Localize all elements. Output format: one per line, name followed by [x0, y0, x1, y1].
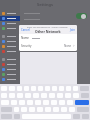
staticText: Security [21, 44, 32, 48]
button[interactable] [0, 26, 20, 31]
staticText: None [64, 44, 72, 48]
button[interactable] [0, 44, 20, 49]
button[interactable]: key [75, 100, 89, 105]
button[interactable] [0, 49, 20, 54]
staticText: Cancel [21, 28, 30, 32]
button[interactable]: Wi-Fi toggle [76, 13, 87, 19]
button[interactable] [0, 72, 20, 77]
button[interactable] [0, 77, 20, 82]
button[interactable] [0, 11, 20, 16]
staticText: Settings [37, 2, 53, 7]
button[interactable]: Security [19, 42, 77, 50]
button[interactable]: Cancel [21, 28, 30, 32]
button[interactable] [0, 62, 20, 67]
staticText: Other Network [35, 29, 61, 34]
button[interactable] [0, 34, 20, 39]
staticText: Enter the password for "Other Network" [27, 26, 69, 29]
staticText: > [73, 44, 75, 48]
staticText: Join [70, 28, 75, 32]
staticText: Name [21, 36, 29, 40]
button[interactable] [0, 67, 20, 72]
button[interactable] [0, 16, 20, 21]
button[interactable]: Join [70, 28, 75, 32]
button[interactable] [0, 39, 20, 44]
button[interactable] [0, 57, 20, 62]
button[interactable] [0, 21, 20, 26]
button[interactable]: Name [19, 34, 77, 42]
